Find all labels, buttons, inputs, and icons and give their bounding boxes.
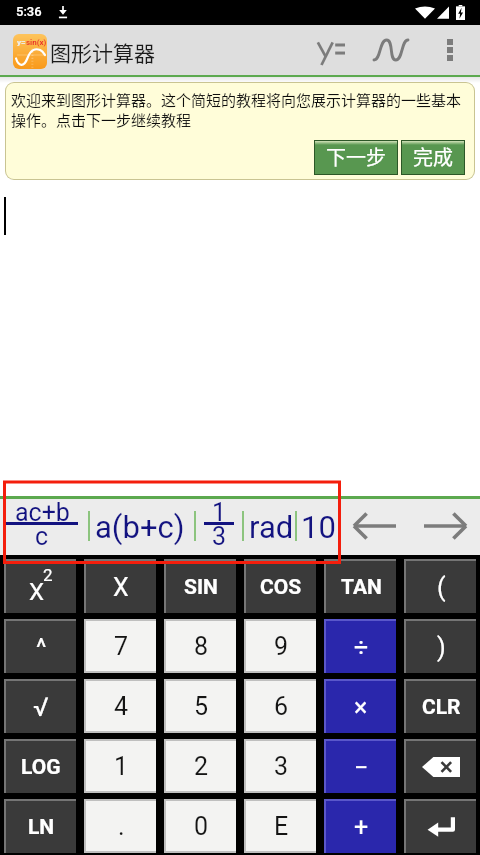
button[interactable]: ^ bbox=[6, 621, 76, 673]
button[interactable]: 5 bbox=[166, 681, 236, 731]
staticText: 10 bbox=[301, 509, 336, 545]
button[interactable]: 9 bbox=[246, 621, 316, 671]
button[interactable]: 1 bbox=[86, 741, 156, 791]
staticText: ÷ bbox=[354, 633, 369, 662]
button[interactable]: − bbox=[326, 741, 396, 793]
staticText: 8 bbox=[194, 632, 209, 661]
staticText: − bbox=[354, 753, 369, 782]
staticText: 欢迎来到图形计算器。这个简短的教程将向您展示计算器的一些基本操作。点击下一步继续… bbox=[11, 89, 469, 130]
button[interactable] bbox=[406, 741, 476, 793]
staticText: SIN bbox=[184, 575, 218, 600]
staticText: 6 bbox=[274, 692, 289, 721]
button[interactable]: ( bbox=[406, 561, 476, 613]
staticText: CLR bbox=[422, 695, 461, 720]
button[interactable]: LOG bbox=[6, 741, 76, 793]
staticText: + bbox=[354, 813, 369, 842]
button[interactable]: Move cursor right bbox=[419, 496, 470, 555]
staticText: 0 bbox=[194, 812, 209, 841]
button[interactable]: X bbox=[6, 561, 76, 613]
button[interactable]: 8 bbox=[166, 621, 236, 671]
staticText: 7 bbox=[114, 632, 129, 661]
button[interactable]: 欢迎来到图形计算器。这个简短的教程将向您展示计算器的一些基本操作。点击下一步继续… bbox=[6, 83, 474, 179]
staticText: . bbox=[118, 812, 125, 841]
staticText: y= bbox=[17, 38, 26, 47]
button[interactable]: 0 bbox=[166, 801, 236, 851]
staticText: 4 bbox=[114, 692, 129, 721]
button[interactable]: 1 bbox=[204, 497, 234, 556]
button[interactable]: TAN bbox=[326, 561, 396, 613]
staticText: sin(x) bbox=[26, 38, 47, 47]
staticText: 2 bbox=[43, 565, 53, 585]
staticText: LOG bbox=[21, 755, 61, 780]
button[interactable]: 3 bbox=[246, 741, 316, 791]
staticText: 完成 bbox=[413, 142, 453, 171]
staticText: X bbox=[29, 578, 45, 606]
button[interactable]: + bbox=[326, 801, 396, 853]
staticText: 1 bbox=[212, 498, 227, 527]
button[interactable]: CLR bbox=[406, 681, 476, 733]
button[interactable]: SIN bbox=[166, 561, 236, 613]
button[interactable]: 2 bbox=[166, 741, 236, 791]
staticText: LN bbox=[28, 815, 55, 840]
staticText: 5:36 bbox=[16, 4, 42, 19]
staticText: 1 bbox=[114, 752, 129, 781]
button[interactable]: X bbox=[86, 561, 156, 613]
button[interactable]: 下一步 bbox=[315, 141, 397, 174]
staticText: 5 bbox=[194, 692, 209, 721]
staticText: X bbox=[113, 573, 129, 602]
button[interactable]: 4 bbox=[86, 681, 156, 731]
staticText: c bbox=[35, 522, 49, 549]
button[interactable]: E bbox=[246, 801, 316, 851]
button[interactable] bbox=[406, 801, 476, 853]
button[interactable]: ) bbox=[406, 621, 476, 673]
staticText: ) bbox=[437, 633, 446, 662]
staticText: 下一步 bbox=[326, 142, 386, 171]
button[interactable]: √ bbox=[6, 681, 76, 733]
button[interactable]: 6 bbox=[246, 681, 316, 731]
button[interactable]: . bbox=[86, 801, 156, 851]
staticText: E bbox=[274, 812, 289, 841]
button[interactable]: a(b+c) bbox=[95, 497, 185, 556]
button[interactable]: ac+b bbox=[6, 497, 78, 556]
staticText: × bbox=[354, 693, 368, 722]
button[interactable]: rad bbox=[248, 497, 294, 556]
staticText: 9 bbox=[274, 632, 289, 661]
button[interactable]: 10 bbox=[299, 497, 337, 556]
button[interactable]: LN bbox=[6, 801, 76, 853]
button[interactable]: 完成 bbox=[402, 141, 464, 174]
button[interactable]: More options bbox=[432, 25, 468, 75]
staticText: COS bbox=[260, 575, 302, 600]
staticText: ^ bbox=[36, 633, 47, 662]
staticText: 图形计算器 bbox=[50, 37, 155, 67]
button[interactable]: 7 bbox=[86, 621, 156, 671]
button[interactable]: × bbox=[326, 681, 396, 733]
staticText: rad bbox=[249, 509, 294, 545]
staticText: √ bbox=[33, 692, 49, 722]
staticText: a(b+c) bbox=[95, 509, 185, 545]
staticText: 3 bbox=[212, 522, 227, 549]
button[interactable]: Function list bbox=[308, 25, 354, 75]
button[interactable]: Move cursor left bbox=[349, 496, 400, 555]
staticText: ( bbox=[437, 573, 446, 602]
staticText: 3 bbox=[274, 752, 289, 781]
button[interactable]: ÷ bbox=[326, 621, 396, 673]
staticText: TAN bbox=[341, 575, 382, 600]
staticText: ac+b bbox=[15, 498, 70, 527]
button[interactable]: Graph view bbox=[368, 25, 414, 75]
button[interactable]: COS bbox=[246, 561, 316, 613]
staticText: 2 bbox=[194, 752, 209, 781]
